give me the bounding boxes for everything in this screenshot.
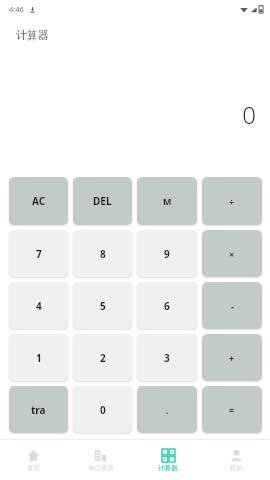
- staticText: 我的: [230, 464, 243, 472]
- staticText: 单位换算: [88, 464, 114, 472]
- button[interactable]: 8: [73, 230, 132, 277]
- staticText: 5: [100, 299, 106, 313]
- staticText: 1: [36, 351, 42, 365]
- staticText: .: [166, 404, 169, 416]
- button[interactable]: DEL: [73, 177, 132, 225]
- staticText: 0: [100, 403, 106, 417]
- staticText: 3: [164, 351, 170, 365]
- button[interactable]: 5: [73, 282, 132, 329]
- staticText: -: [231, 300, 234, 312]
- button[interactable]: 首页: [0, 440, 67, 480]
- button[interactable]: 2: [73, 334, 132, 381]
- staticText: =: [229, 404, 235, 416]
- staticText: 首页: [27, 464, 40, 472]
- button[interactable]: 7: [9, 230, 68, 277]
- button[interactable]: 1: [9, 334, 68, 381]
- staticText: 9: [164, 247, 170, 261]
- staticText: ×: [229, 248, 235, 260]
- button[interactable]: tra: [9, 386, 68, 433]
- staticText: 7: [36, 247, 42, 261]
- button[interactable]: 单位换算: [67, 440, 134, 480]
- staticText: 4:46: [9, 4, 24, 14]
- button[interactable]: 计算器: [134, 440, 202, 480]
- staticText: AC: [32, 194, 46, 208]
- button[interactable]: AC: [9, 177, 68, 225]
- button[interactable]: ÷: [202, 177, 262, 225]
- staticText: +: [229, 352, 235, 364]
- staticText: tra: [31, 403, 46, 417]
- button[interactable]: 0: [73, 386, 132, 433]
- staticText: 计算器: [158, 464, 178, 472]
- button[interactable]: =: [202, 386, 262, 433]
- button[interactable]: 我的: [202, 440, 270, 480]
- button[interactable]: 3: [137, 334, 197, 381]
- staticText: 计算器: [16, 28, 49, 42]
- button[interactable]: -: [202, 282, 262, 329]
- staticText: 4: [36, 299, 42, 313]
- button[interactable]: M: [137, 177, 197, 225]
- staticText: 2: [100, 351, 106, 365]
- button[interactable]: +: [202, 334, 262, 381]
- button[interactable]: 6: [137, 282, 197, 329]
- staticText: DEL: [93, 194, 112, 208]
- staticText: ÷: [229, 195, 235, 207]
- staticText: 0: [242, 98, 256, 131]
- staticText: M: [163, 195, 172, 207]
- staticText: 6: [164, 299, 170, 313]
- button[interactable]: ×: [202, 230, 262, 277]
- button[interactable]: .: [137, 386, 197, 433]
- staticText: 8: [100, 247, 106, 261]
- button[interactable]: 9: [137, 230, 197, 277]
- button[interactable]: 4: [9, 282, 68, 329]
